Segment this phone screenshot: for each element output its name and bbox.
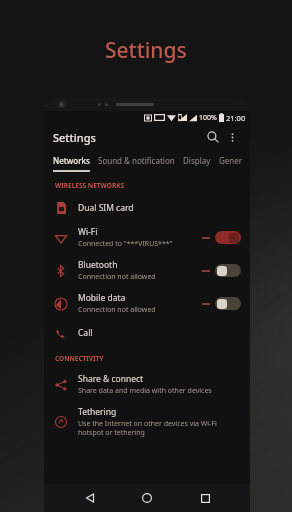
button[interactable]: Recents: [193, 486, 217, 510]
button[interactable]: Sound & notification: [98, 155, 183, 166]
staticText: Use the Internet on other devices via Wi…: [78, 419, 241, 437]
button[interactable]: Off: [215, 264, 241, 277]
staticText: Connection not allowed: [78, 272, 156, 282]
staticText: Dual SIM card: [78, 202, 134, 214]
button[interactable]: Networks: [53, 155, 98, 166]
staticText: Mobile data: [78, 292, 126, 304]
staticText: Sound & notification: [98, 155, 175, 166]
staticText: Display: [183, 155, 211, 166]
button[interactable]: Mobile data: [44, 287, 250, 320]
staticText: Tethering: [78, 406, 117, 418]
button[interactable]: Display: [183, 155, 219, 166]
button[interactable]: On: [215, 231, 241, 244]
staticText: Connection not allowed: [78, 305, 156, 315]
staticText: Settings: [105, 36, 187, 65]
staticText: WIRELESS NETWORKS: [55, 181, 125, 190]
button[interactable]: Dual SIM card: [44, 195, 250, 221]
button[interactable]: More options: [223, 128, 241, 146]
staticText: Settings: [53, 130, 96, 145]
button[interactable]: Off: [215, 297, 241, 310]
button[interactable]: Bluetooth: [44, 254, 250, 287]
staticText: Bluetooth: [78, 259, 118, 271]
staticText: Share data and media with other devices: [78, 386, 212, 396]
staticText: 21:00: [226, 113, 246, 123]
button[interactable]: Home: [135, 486, 159, 510]
button[interactable]: Search: [203, 127, 223, 147]
staticText: Call: [78, 327, 93, 339]
button[interactable]: Wi-Fi: [44, 221, 250, 254]
button[interactable]: General: [219, 155, 250, 166]
staticText: CONNECTIVITY: [55, 354, 104, 363]
button[interactable]: Tethering: [44, 401, 250, 442]
staticText: General: [219, 155, 242, 166]
button[interactable]: Share & connect: [44, 368, 250, 401]
staticText: Share & connect: [78, 373, 144, 385]
button[interactable]: Back: [78, 486, 102, 510]
button[interactable]: Call: [44, 320, 250, 346]
staticText: Networks: [53, 155, 90, 166]
staticText: 100%: [199, 113, 217, 123]
staticText: Wi-Fi: [78, 226, 98, 238]
staticText: Connected to "***VIRUS***": [78, 239, 173, 249]
